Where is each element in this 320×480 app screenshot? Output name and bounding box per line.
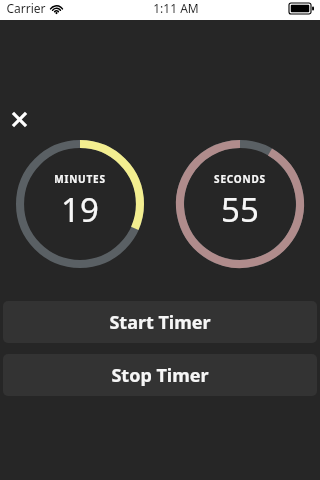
- staticText: 55: [221, 187, 259, 232]
- button[interactable]: Close: [6, 106, 32, 132]
- staticText: Stop Timer: [111, 363, 209, 388]
- staticText: Start Timer: [109, 310, 211, 335]
- staticText: SECONDS: [214, 172, 266, 186]
- staticText: MINUTES: [54, 172, 106, 186]
- button[interactable]: Start Timer: [3, 301, 317, 343]
- staticText: Carrier: [6, 0, 46, 16]
- staticText: 1:11 AM: [153, 0, 199, 16]
- button[interactable]: Stop Timer: [3, 354, 317, 396]
- staticText: 19: [61, 187, 99, 232]
